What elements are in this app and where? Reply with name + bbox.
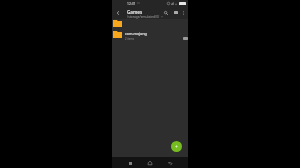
button[interactable]: More options <box>179 8 188 17</box>
button[interactable]: Change view <box>171 8 180 17</box>
button[interactable] <box>112 18 188 29</box>
button[interactable]: Home <box>145 158 155 168</box>
staticText: 12:31 <box>127 1 136 5</box>
button[interactable]: com.mojang <box>112 29 188 40</box>
button[interactable]: Scroll <box>183 37 188 40</box>
button[interactable]: Back <box>113 8 122 17</box>
staticText: com.mojang <box>125 31 147 36</box>
button[interactable]: Add <box>171 141 182 152</box>
staticText: /storage/emulated/0/ <box>127 15 160 19</box>
button[interactable]: Recent apps <box>125 158 135 168</box>
button[interactable]: Back <box>165 158 175 168</box>
staticText: Games <box>127 9 143 15</box>
staticText: 2 items <box>125 37 134 41</box>
button[interactable]: Search <box>161 8 170 17</box>
